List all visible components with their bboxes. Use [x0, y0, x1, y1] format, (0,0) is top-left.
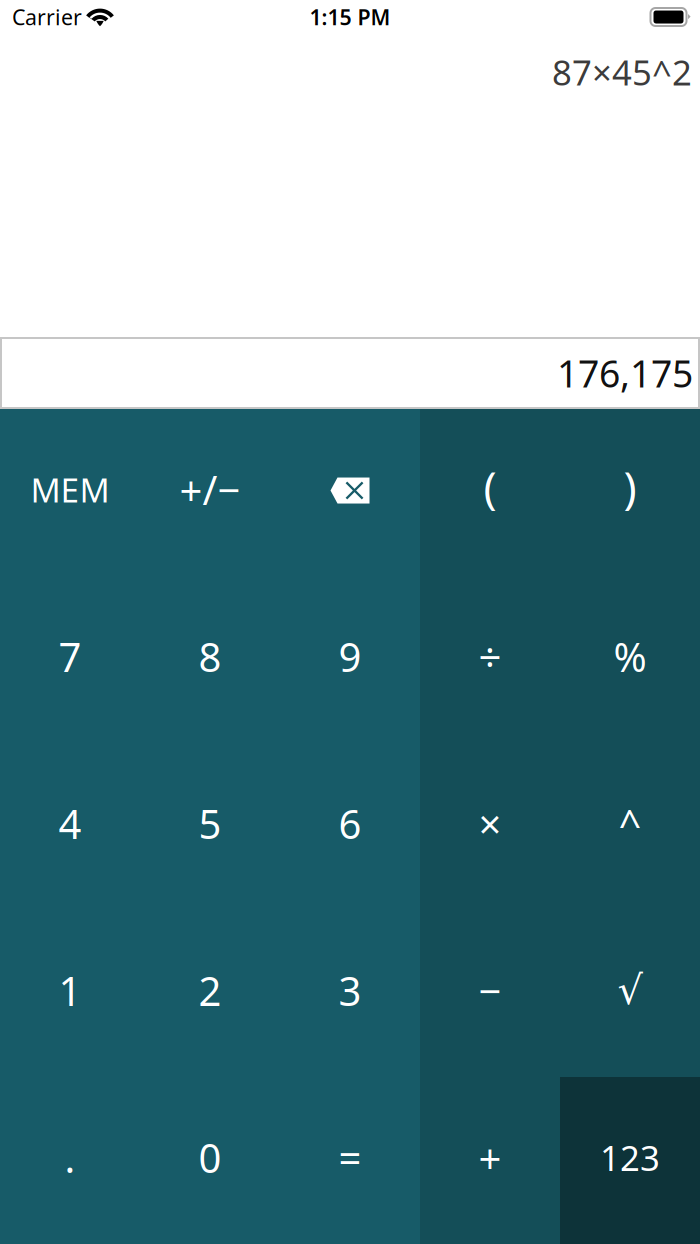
button[interactable]: .	[0, 1077, 140, 1244]
staticText: ×	[478, 797, 501, 850]
button[interactable]: 2	[140, 910, 280, 1077]
staticText: %	[613, 630, 646, 683]
button[interactable]: 1	[0, 910, 140, 1077]
button[interactable]: ×	[420, 743, 560, 910]
staticText: 1	[58, 964, 81, 1017]
button[interactable]: +	[420, 1077, 560, 1244]
staticText: 4	[58, 797, 81, 850]
button[interactable]: )	[560, 409, 700, 576]
staticText: ÷	[478, 630, 501, 683]
button[interactable]: 8	[140, 576, 280, 743]
button[interactable]: 9	[280, 576, 420, 743]
button[interactable]: +/−	[140, 409, 280, 576]
button[interactable]: 123	[560, 1077, 700, 1244]
staticText: 87×45^2	[552, 49, 692, 95]
button[interactable]: ÷	[420, 576, 560, 743]
button[interactable]: −	[420, 910, 560, 1077]
staticText: (	[483, 457, 496, 516]
button[interactable]: 3	[280, 910, 420, 1077]
button[interactable]: Backspace	[280, 409, 420, 576]
staticText: 8	[198, 630, 221, 683]
staticText: .	[64, 1131, 75, 1184]
staticText: −	[478, 964, 501, 1017]
button[interactable]: 7	[0, 576, 140, 743]
button[interactable]: 4	[0, 743, 140, 910]
button[interactable]: 0	[140, 1077, 280, 1244]
staticText: 0	[198, 1131, 221, 1184]
staticText: 5	[198, 797, 221, 850]
staticText: ^	[618, 797, 641, 850]
staticText: √	[617, 968, 642, 1013]
button[interactable]: MEM	[0, 409, 140, 576]
staticText: 1:15 PM	[309, 3, 390, 31]
staticText: 6	[338, 797, 361, 850]
button[interactable]: √	[560, 910, 700, 1077]
staticText: 3	[338, 964, 361, 1017]
staticText: 123	[600, 1134, 660, 1180]
button[interactable]: =	[280, 1077, 420, 1244]
button[interactable]: (	[420, 409, 560, 576]
staticText: )	[623, 457, 636, 516]
staticText: +	[478, 1131, 501, 1184]
staticText: =	[338, 1131, 361, 1184]
staticText: 2	[198, 964, 221, 1017]
button[interactable]: ^	[560, 743, 700, 910]
button[interactable]: %	[560, 576, 700, 743]
staticText: Carrier	[12, 3, 82, 31]
staticText: +/−	[179, 463, 240, 516]
button[interactable]: 6	[280, 743, 420, 910]
button[interactable]: 5	[140, 743, 280, 910]
staticText: MEM	[30, 467, 109, 512]
staticText: 9	[338, 630, 361, 683]
staticText: 7	[58, 630, 81, 683]
staticText: 176,175	[557, 348, 693, 398]
